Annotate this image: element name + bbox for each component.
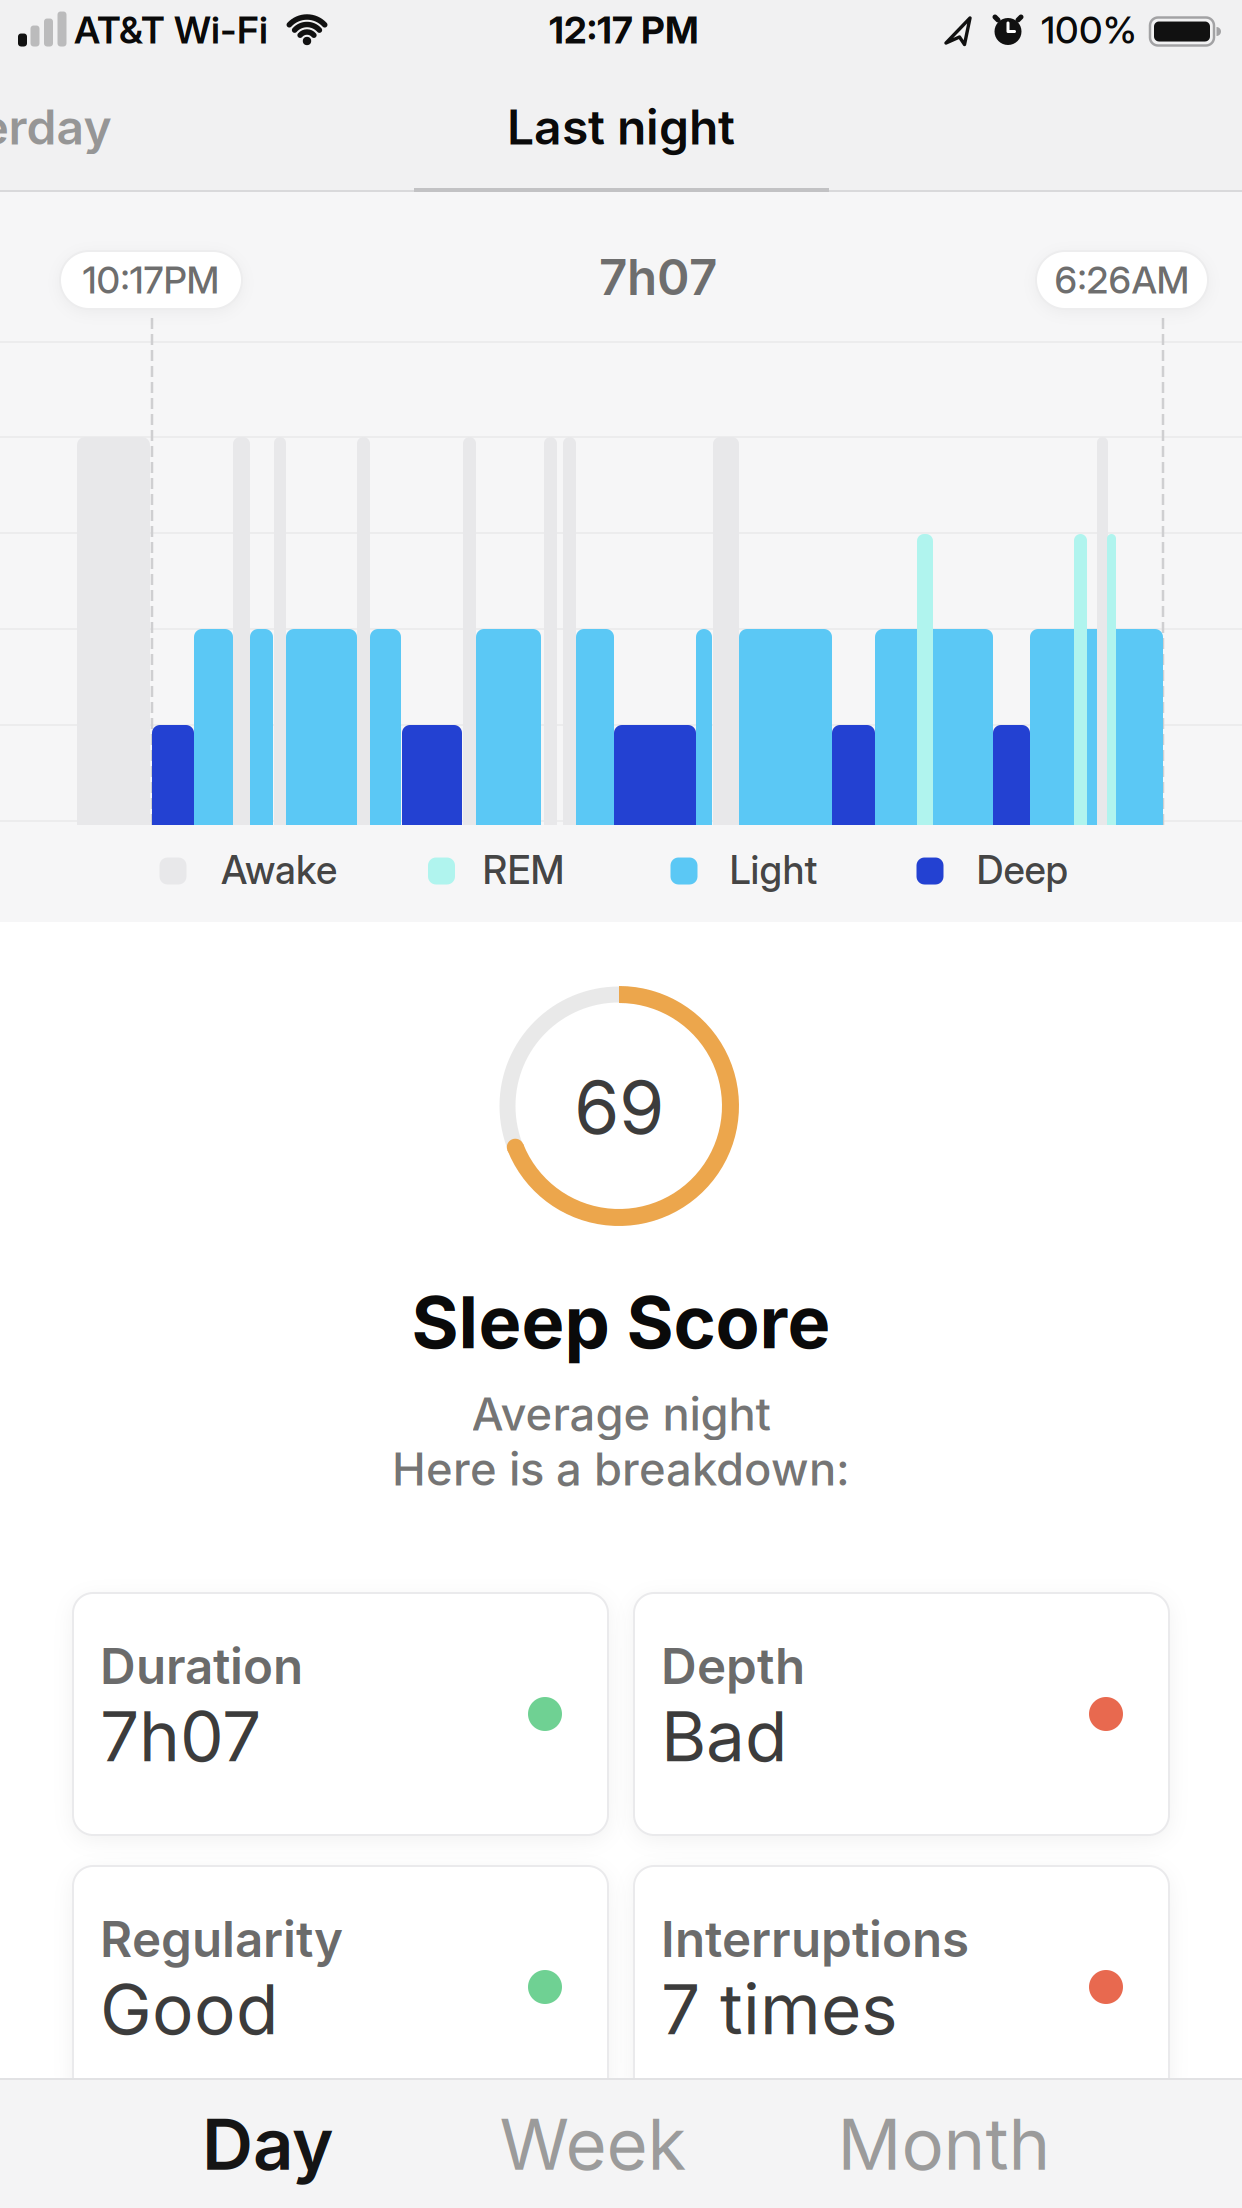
staticText: 7h07 bbox=[599, 248, 717, 306]
staticText: Here is a breakdown: bbox=[392, 1442, 850, 1496]
staticText: Last night bbox=[507, 99, 735, 155]
staticText: Deep bbox=[976, 847, 1068, 893]
staticText: Sleep Score bbox=[411, 1279, 830, 1364]
staticText: Week bbox=[499, 2102, 686, 2186]
staticText: 12:17 PM bbox=[549, 8, 699, 52]
staticText: 6:26AM bbox=[1054, 258, 1189, 302]
button[interactable]: Week bbox=[443, 2080, 743, 2208]
staticText: 100% bbox=[1041, 8, 1137, 52]
button[interactable]: Month bbox=[794, 2080, 1094, 2208]
staticText: Awake bbox=[221, 847, 337, 893]
staticText: Bad bbox=[661, 1695, 787, 1777]
staticText: AT&T Wi-Fi bbox=[74, 8, 268, 52]
staticText: Depth bbox=[661, 1637, 805, 1695]
button[interactable]: Regularity bbox=[73, 1866, 608, 2108]
staticText: 10:17PM bbox=[82, 258, 219, 302]
staticText: Month bbox=[837, 2102, 1050, 2186]
staticText: Good bbox=[100, 1968, 278, 2050]
staticText: Day bbox=[202, 2102, 334, 2186]
staticText: Duration bbox=[100, 1637, 303, 1695]
staticText: 7h07 bbox=[100, 1695, 261, 1777]
staticText: erday bbox=[0, 99, 111, 155]
staticText: 7 times bbox=[661, 1968, 898, 2050]
staticText: Interruptions bbox=[661, 1910, 969, 1968]
staticText: Regularity bbox=[100, 1910, 343, 1968]
staticText: 69 bbox=[574, 1064, 664, 1150]
staticText: Light bbox=[729, 847, 817, 893]
button[interactable]: Interruptions bbox=[634, 1866, 1169, 2108]
button[interactable]: Duration bbox=[73, 1593, 608, 1835]
button[interactable]: Day bbox=[118, 2080, 418, 2208]
staticText: Average night bbox=[471, 1387, 770, 1441]
staticText: REM bbox=[482, 847, 564, 893]
button[interactable]: erday bbox=[0, 99, 111, 155]
button[interactable]: Depth bbox=[634, 1593, 1169, 1835]
